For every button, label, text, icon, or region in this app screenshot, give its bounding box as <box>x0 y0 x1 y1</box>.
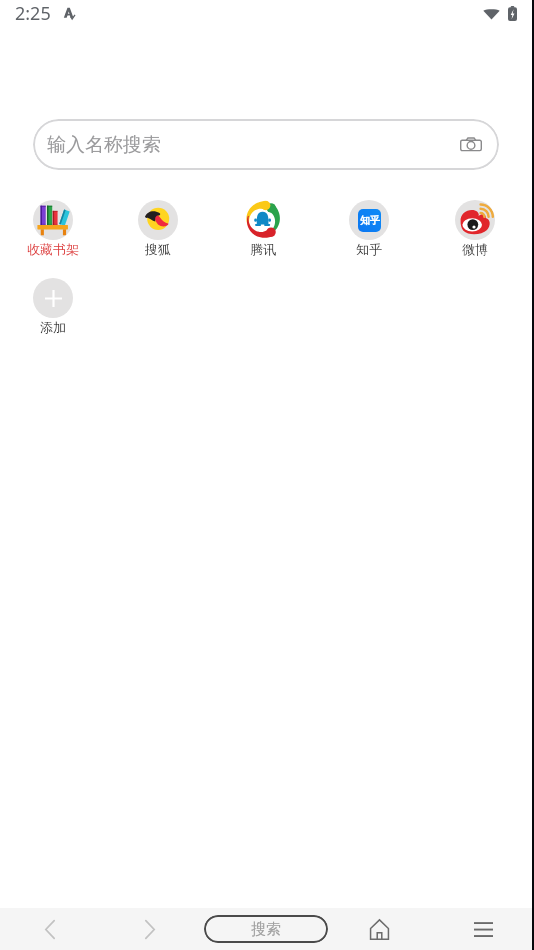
button[interactable]: 知乎 <box>316 196 422 261</box>
button[interactable]: 搜狐 <box>105 196 210 261</box>
button[interactable]: 输入名称搜索 <box>33 119 499 170</box>
button[interactable]: 腾讯 <box>210 196 316 261</box>
button[interactable]: 微博 <box>422 196 528 261</box>
button[interactable]: Menu <box>432 908 534 950</box>
staticText: 腾讯 <box>250 241 276 257</box>
staticText: 微博 <box>462 241 488 257</box>
staticText: 2:25 <box>15 1 51 26</box>
staticText: 搜索 <box>251 920 281 939</box>
button[interactable]: Back <box>0 908 100 950</box>
button[interactable]: 搜索 <box>204 915 328 943</box>
button[interactable]: 添加 <box>0 274 105 339</box>
staticText: 知乎 <box>356 241 382 257</box>
button[interactable]: 收藏书架 <box>0 196 105 261</box>
staticText: 输入名称搜索 <box>47 133 161 157</box>
staticText: 添加 <box>40 319 66 335</box>
button[interactable]: Home <box>331 908 432 950</box>
button[interactable]: Forward <box>100 908 200 950</box>
staticText: 知乎 <box>360 214 380 227</box>
staticText: 收藏书架 <box>27 241 79 257</box>
staticText: 搜狐 <box>145 241 171 257</box>
button[interactable]: Camera search <box>455 129 487 161</box>
